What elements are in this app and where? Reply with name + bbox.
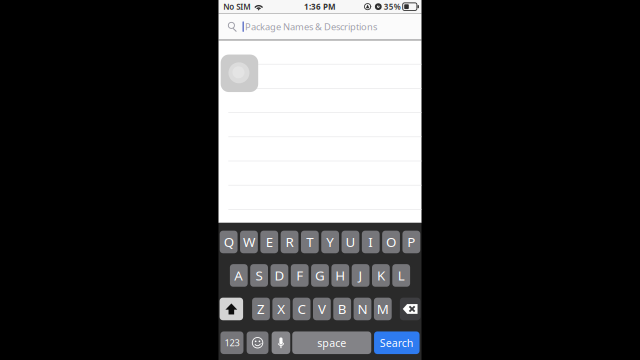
staticText: Z: [257, 300, 265, 318]
button[interactable]: Q: [220, 231, 238, 253]
button[interactable]: R: [281, 231, 298, 253]
staticText: D: [274, 267, 284, 284]
button[interactable]: Y: [321, 231, 339, 253]
staticText: E: [266, 233, 273, 251]
button[interactable]: M: [374, 298, 392, 320]
button[interactable]: A: [230, 264, 248, 287]
button[interactable]: F: [291, 264, 309, 287]
staticText: O: [386, 233, 396, 251]
staticText: A: [234, 267, 243, 284]
staticText: R: [285, 233, 293, 251]
staticText: 1:36 PM: [304, 1, 336, 12]
button[interactable]: T: [301, 231, 319, 253]
staticText: K: [377, 267, 385, 284]
staticText: G: [315, 267, 325, 284]
button[interactable]: Delete: [400, 298, 420, 320]
staticText: N: [357, 300, 367, 318]
button[interactable]: I: [362, 231, 380, 253]
button[interactable]: Package icon: [221, 55, 258, 92]
button[interactable]: K: [372, 264, 390, 287]
button[interactable]: O: [382, 231, 400, 253]
staticText: F: [296, 267, 303, 284]
button[interactable]: Search: [374, 331, 420, 354]
staticText: H: [335, 267, 345, 284]
button[interactable]: J: [352, 264, 369, 287]
button[interactable]: L: [392, 264, 410, 287]
button[interactable]: D: [270, 264, 288, 287]
button[interactable]: B: [333, 298, 351, 320]
staticText: T: [306, 233, 313, 251]
staticText: M: [377, 300, 389, 318]
button[interactable]: G: [311, 264, 329, 287]
button[interactable]: Z: [252, 298, 270, 320]
staticText: 123: [224, 337, 239, 349]
staticText: C: [298, 300, 306, 318]
button[interactable]: W: [240, 231, 258, 253]
staticText: X: [277, 300, 285, 318]
staticText: P: [407, 233, 415, 251]
staticText: J: [359, 267, 363, 284]
staticText: U: [345, 233, 355, 251]
button[interactable]: U: [342, 231, 359, 253]
button[interactable]: Package Names & Descriptions: [218, 14, 421, 40]
button[interactable]: Shift: [220, 298, 243, 320]
staticText: V: [318, 300, 326, 318]
staticText: space: [317, 336, 346, 350]
staticText: Search: [380, 336, 414, 350]
staticText: 35%: [384, 1, 401, 12]
staticText: S: [256, 267, 263, 284]
button[interactable]: E: [260, 231, 278, 253]
staticText: Package Names & Descriptions: [245, 20, 377, 33]
staticText: Y: [326, 233, 334, 251]
button[interactable]: X: [272, 298, 290, 320]
button[interactable]: space: [292, 331, 371, 354]
button[interactable]: Emoji: [247, 331, 268, 354]
button[interactable]: S: [250, 264, 268, 287]
staticText: Q: [224, 233, 234, 251]
staticText: No SIM: [223, 1, 250, 12]
button[interactable]: N: [354, 298, 371, 320]
button[interactable]: Dictation: [272, 331, 290, 354]
button[interactable]: V: [313, 298, 331, 320]
button[interactable]: 123: [220, 331, 243, 354]
button[interactable]: H: [331, 264, 349, 287]
staticText: I: [368, 233, 373, 251]
staticText: B: [338, 300, 347, 318]
button[interactable]: C: [293, 298, 310, 320]
staticText: W: [243, 233, 255, 251]
staticText: L: [398, 267, 405, 284]
button[interactable]: P: [402, 231, 420, 253]
